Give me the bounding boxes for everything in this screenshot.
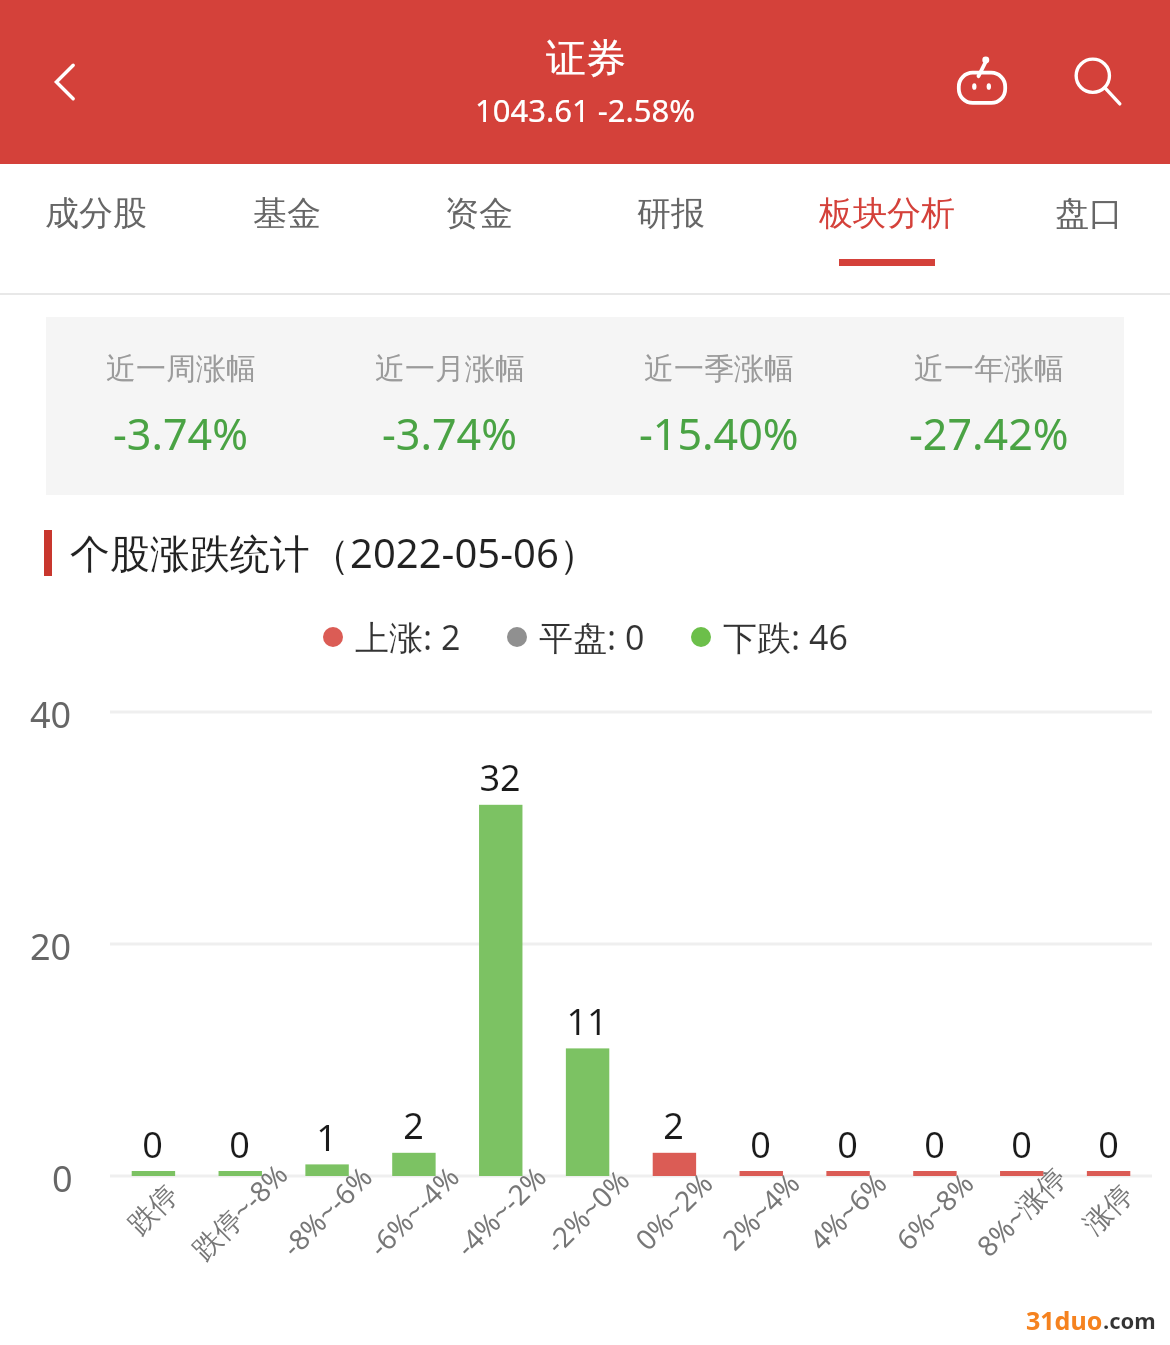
staticText: 0 — [750, 1120, 771, 1169]
staticText: 跌停~-8% — [183, 1155, 296, 1267]
staticText: 2%~4% — [713, 1164, 807, 1258]
staticText: 0 — [142, 1120, 163, 1169]
staticText: 1 — [316, 1113, 337, 1162]
staticText: 近一月涨幅 — [375, 350, 525, 388]
button[interactable]: 板块分析 — [767, 164, 1007, 295]
staticText: -3.74% — [382, 404, 517, 463]
button[interactable]: 盘口 — [1007, 164, 1170, 295]
button[interactable]: 研报 — [575, 164, 767, 295]
staticText: .com — [1103, 1305, 1156, 1335]
staticText: 0%~2% — [626, 1164, 720, 1258]
staticText: -2%~0% — [537, 1161, 637, 1261]
staticText: 0 — [52, 1154, 73, 1203]
button[interactable]: 成分股 — [0, 164, 191, 295]
staticText: 近一年涨幅 — [914, 350, 1064, 388]
staticText: 1043.61 -2.58% — [475, 89, 696, 131]
staticText: 40 — [30, 690, 72, 739]
button[interactable]: 平盘: 0 — [507, 614, 645, 660]
staticText: -8%~-6% — [273, 1158, 380, 1264]
staticText: 6%~8% — [887, 1164, 981, 1258]
staticText: -4%~-2% — [447, 1158, 554, 1264]
staticText: 上涨: 2 — [355, 614, 461, 660]
button[interactable]: 近一年涨幅 — [854, 350, 1124, 463]
staticText: 成分股 — [45, 192, 147, 235]
staticText: -15.40% — [639, 404, 799, 463]
staticText: 平盘: 0 — [539, 614, 645, 660]
staticText: 0 — [1011, 1120, 1032, 1169]
button[interactable]: 下跌: 46 — [691, 614, 848, 660]
staticText: 涨停 — [1076, 1177, 1140, 1242]
button[interactable]: Assistant — [944, 44, 1020, 120]
staticText: 近一周涨幅 — [106, 350, 256, 388]
staticText: 盘口 — [1055, 192, 1123, 235]
staticText: 32 — [479, 753, 521, 802]
staticText: 跌停 — [121, 1177, 185, 1242]
staticText: -3.74% — [113, 404, 248, 463]
staticText: 8%~涨停 — [968, 1158, 1074, 1264]
staticText: 31duo — [1026, 1303, 1103, 1337]
staticText: 2 — [403, 1101, 424, 1150]
staticText: -27.42% — [909, 404, 1069, 463]
staticText: 研报 — [637, 192, 705, 235]
staticText: 0 — [924, 1120, 945, 1169]
button[interactable]: 近一月涨幅 — [315, 350, 584, 463]
button[interactable]: 近一周涨幅 — [46, 350, 315, 463]
staticText: 板块分析 — [819, 192, 955, 235]
staticText: 个股涨跌统计（2022-05-06） — [70, 525, 599, 580]
staticText: 证券 — [546, 33, 626, 83]
button[interactable]: 基金 — [191, 164, 383, 295]
staticText: -6%~-4% — [360, 1158, 467, 1264]
staticText: 0 — [229, 1120, 250, 1169]
staticText: 近一季涨幅 — [644, 350, 794, 388]
button[interactable]: 资金 — [383, 164, 575, 295]
staticText: 4%~6% — [800, 1164, 894, 1258]
staticText: 下跌: 46 — [723, 614, 848, 660]
button[interactable]: Search — [1060, 44, 1136, 120]
staticText: 0 — [1098, 1120, 1119, 1169]
staticText: 0 — [837, 1120, 858, 1169]
button[interactable]: Back — [34, 50, 98, 114]
staticText: 基金 — [253, 192, 321, 235]
button[interactable]: 近一季涨幅 — [584, 350, 854, 463]
button[interactable]: 上涨: 2 — [323, 614, 461, 660]
staticText: 20 — [30, 922, 72, 971]
staticText: 11 — [566, 997, 608, 1046]
staticText: 资金 — [445, 192, 513, 235]
staticText: 2 — [663, 1101, 684, 1150]
